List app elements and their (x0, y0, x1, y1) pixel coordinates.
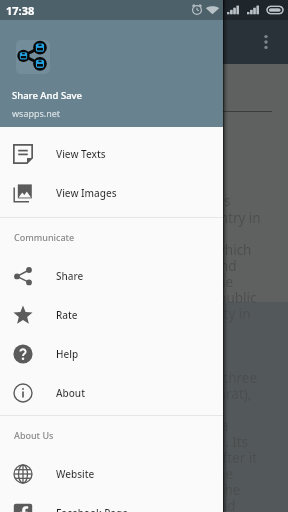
staticText: Share And Save (12, 89, 83, 102)
staticText: wsapps.net (12, 107, 61, 119)
staticText: About Us (14, 429, 54, 441)
button[interactable]: Help (0, 334, 223, 373)
staticText: Share (56, 269, 84, 283)
button[interactable]: View Texts (0, 134, 223, 173)
button[interactable]: Share (0, 256, 223, 295)
staticText: Communicate (14, 231, 75, 243)
staticText: Rate (56, 308, 78, 322)
staticText: About (56, 386, 85, 400)
staticText: Website (56, 467, 95, 481)
staticText: 17:38 (6, 3, 35, 18)
button[interactable]: View Images (0, 173, 223, 212)
staticText: View Images (56, 186, 117, 200)
button[interactable]: Rate (0, 295, 223, 334)
staticText: View Texts (56, 147, 106, 161)
staticText: Facebook Page (56, 506, 129, 512)
button[interactable]: Facebook Page (0, 493, 223, 512)
button[interactable]: More options (250, 26, 282, 58)
staticText: Help (56, 347, 79, 361)
button[interactable]: About (0, 373, 223, 412)
staticText: Bangladesh, officially the People's Repu… (16, 192, 272, 512)
staticText: Bangladesh (16, 76, 106, 98)
button[interactable]: Website (0, 454, 223, 493)
